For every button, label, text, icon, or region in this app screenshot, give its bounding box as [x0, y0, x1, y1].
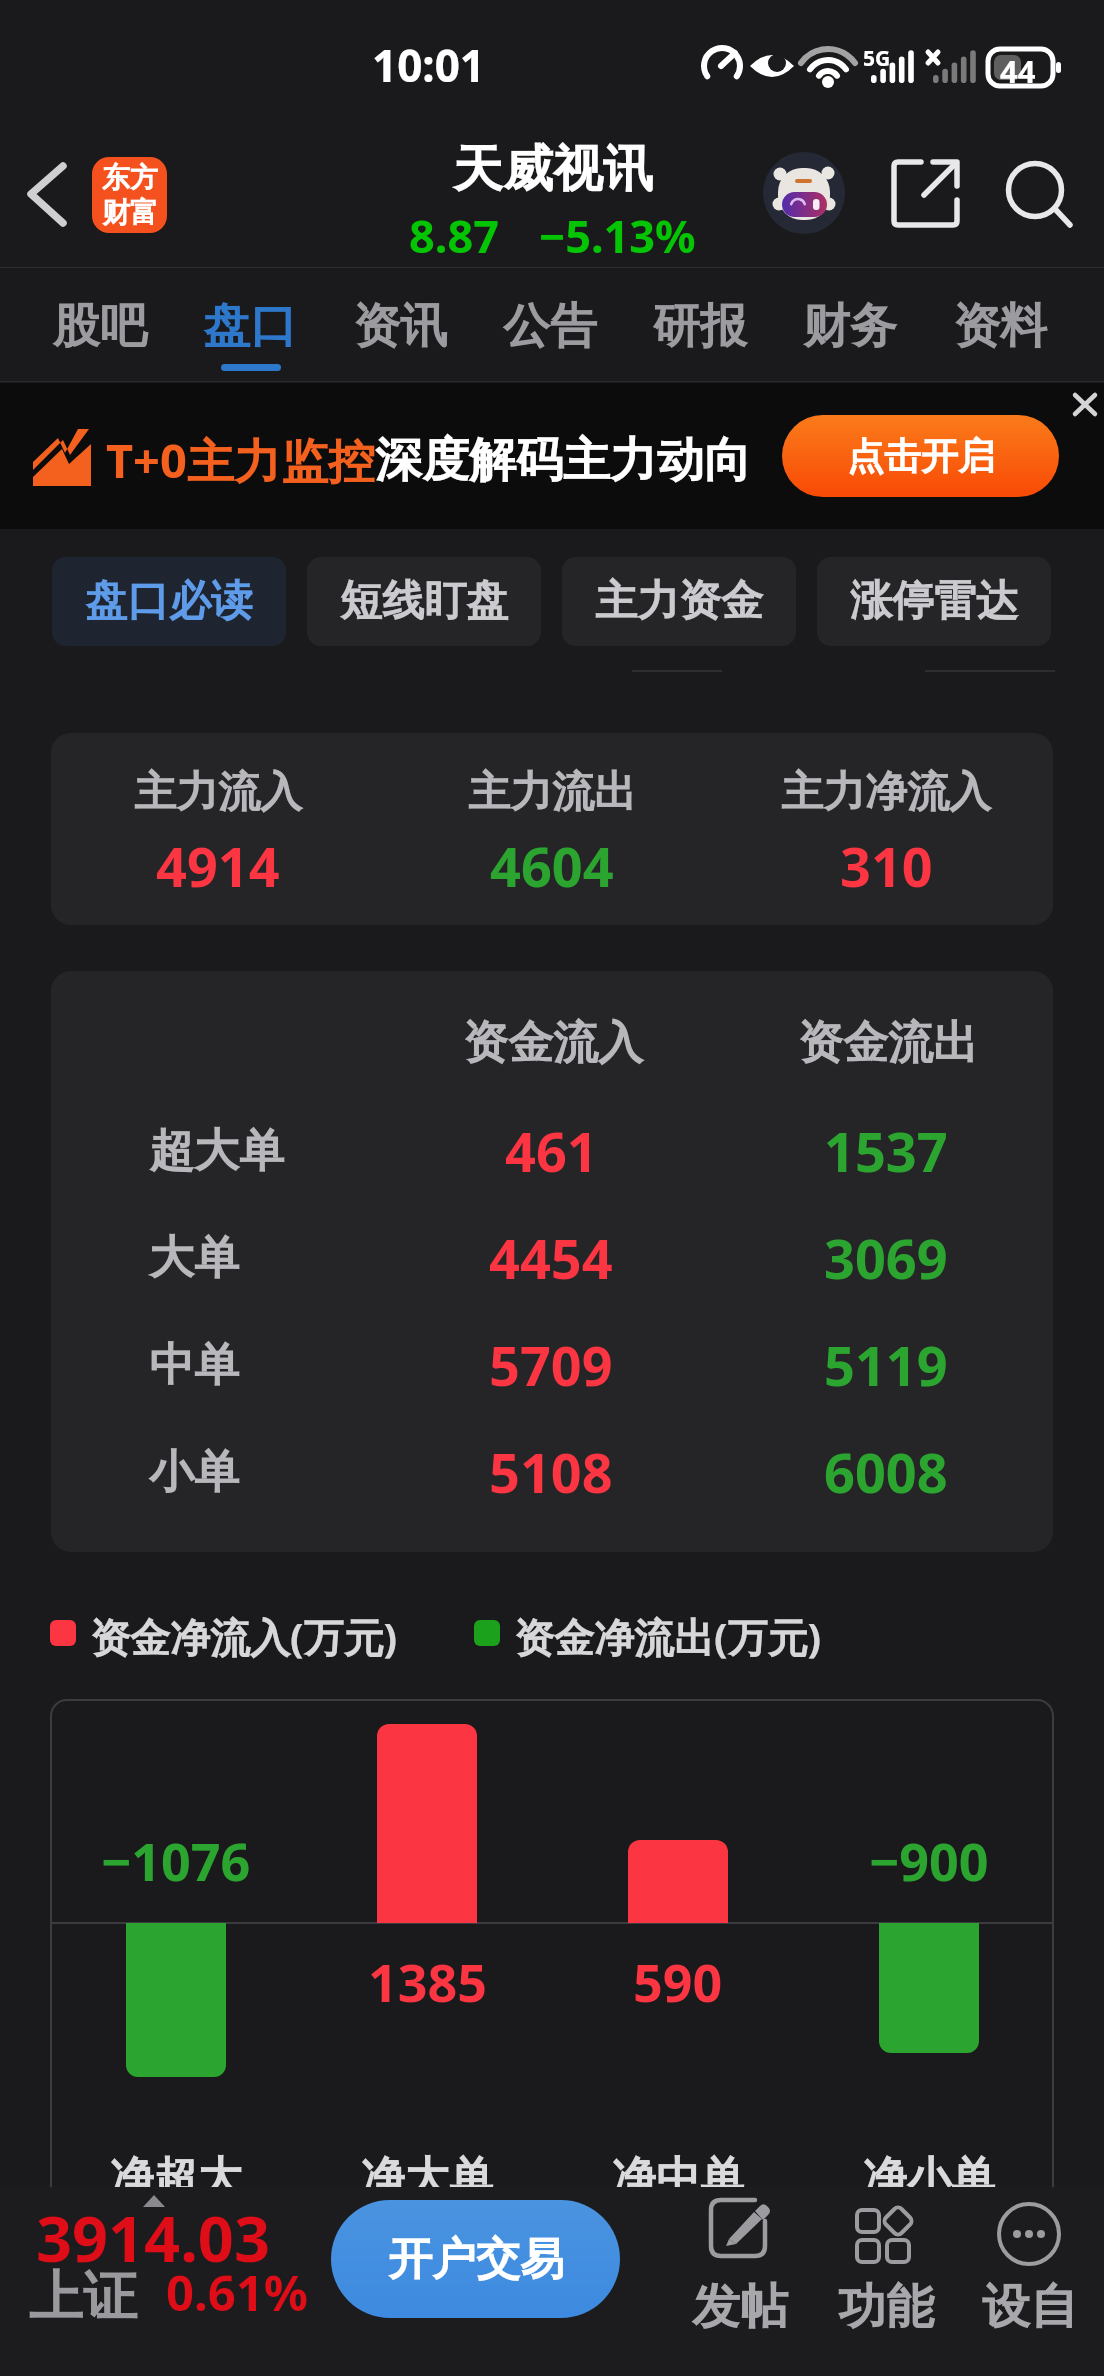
staticText: 3069 [824, 1221, 948, 1295]
button[interactable]: 功能 [811, 2190, 961, 2340]
staticText: 公告 [503, 297, 597, 356]
staticText: 5108 [489, 1435, 613, 1509]
staticText: 1537 [824, 1114, 948, 1188]
button[interactable]: 搜索 [998, 152, 1078, 232]
staticText: 3914.03 [36, 2195, 270, 2281]
button[interactable]: 关闭 [1061, 380, 1104, 428]
button[interactable]: 设自 [955, 2190, 1104, 2340]
staticText: 5G [863, 44, 891, 73]
staticText: 资金净流入(万元) [90, 1609, 398, 1664]
staticText: 净中单 [612, 2151, 744, 2206]
staticText: 净大单 [361, 2151, 493, 2206]
button[interactable]: 东方财富 [92, 157, 167, 233]
staticText: 净超大 [110, 2151, 242, 2206]
button[interactable]: 大单 [51, 1208, 1053, 1308]
staticText: 资讯 [353, 297, 447, 356]
staticText: 资金净流出(万元) [514, 1609, 822, 1664]
staticText: 点击开启 [847, 433, 995, 480]
staticText: 净小单 [863, 2151, 995, 2206]
staticText: 功能 [838, 2277, 934, 2337]
button[interactable]: 3914.03 [20, 2195, 330, 2340]
staticText: 财富 [102, 195, 158, 230]
button[interactable]: 研报 [638, 286, 762, 366]
staticText: 发帖 [692, 2277, 788, 2337]
button[interactable]: 盘口必读 [52, 557, 286, 646]
button[interactable]: 点击开启 [782, 415, 1059, 497]
button[interactable]: 发帖 [665, 2190, 815, 2340]
staticText: 6008 [824, 1435, 948, 1509]
staticText: −1076 [101, 1825, 251, 1893]
staticText: 大单 [149, 1230, 239, 1287]
button[interactable]: 开户交易 [331, 2200, 620, 2318]
button[interactable]: 资讯 [338, 286, 462, 366]
staticText: 股吧 [53, 297, 147, 356]
staticText: 5709 [489, 1328, 613, 1402]
staticText: 研报 [653, 297, 747, 356]
staticText: −900 [869, 1825, 989, 1893]
button[interactable]: 资料 [938, 286, 1062, 366]
button[interactable]: 小单 [51, 1422, 1053, 1522]
button[interactable]: 超大单 [51, 1101, 1053, 1201]
button[interactable]: 主力资金 [562, 557, 796, 646]
button[interactable]: 分享 [884, 152, 964, 232]
staticText: 主力净流入 [781, 766, 991, 819]
staticText: 4454 [489, 1221, 613, 1295]
staticText: 8.87 [409, 205, 499, 266]
staticText: 东方 [102, 160, 158, 195]
button[interactable]: 短线盯盘 [307, 557, 541, 646]
staticText: 深度解码主力动向 [375, 431, 751, 490]
staticText: 10:01 [372, 35, 486, 95]
staticText: 5119 [824, 1328, 948, 1402]
staticText: 资料 [953, 297, 1047, 356]
staticText: −5.13% [539, 205, 696, 266]
staticText: 1385 [368, 1946, 487, 2014]
staticText: 上证 [29, 2263, 137, 2331]
staticText: 涨停雷达 [850, 575, 1018, 628]
staticText: 主力资金 [595, 575, 763, 628]
staticText: 开户交易 [388, 2232, 564, 2287]
staticText: 310 [840, 829, 933, 903]
staticText: 4604 [490, 829, 614, 903]
staticText: 主力流出 [468, 766, 636, 819]
staticText: 短线盯盘 [340, 575, 508, 628]
staticText: 590 [633, 1946, 723, 2014]
button[interactable]: 财务 [788, 286, 912, 366]
staticText: 天威视讯 [453, 138, 653, 201]
staticText: 44 [1000, 50, 1036, 92]
staticText: 设自 [982, 2277, 1078, 2337]
staticText: 4914 [156, 829, 280, 903]
staticText: 财务 [803, 297, 897, 356]
staticText: 盘口 [203, 297, 297, 356]
button[interactable]: 中单 [51, 1315, 1053, 1415]
button[interactable]: 主力流入 [51, 733, 1053, 925]
staticText: 中单 [149, 1337, 239, 1394]
staticText: 超大单 [149, 1123, 284, 1180]
button[interactable]: 返回 [14, 152, 82, 220]
button[interactable]: 公告 [488, 286, 612, 366]
button[interactable]: 盘口 [188, 286, 312, 366]
staticText: 0.61% [166, 2259, 309, 2326]
staticText: 小单 [149, 1444, 239, 1501]
staticText: 盘口必读 [85, 575, 253, 628]
button[interactable]: 股吧 [38, 286, 162, 366]
button[interactable]: AI助手 [763, 152, 845, 234]
button[interactable]: 涨停雷达 [817, 557, 1051, 646]
staticText: 资金流出 [798, 1015, 978, 1072]
staticText: 461 [505, 1114, 598, 1188]
staticText: 资金流入 [463, 1015, 643, 1072]
staticText: T+0主力监控 [106, 428, 375, 492]
staticText: 主力流入 [134, 766, 302, 819]
